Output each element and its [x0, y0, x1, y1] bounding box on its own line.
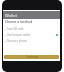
button[interactable]: Wallet [3, 11, 60, 19]
button[interactable]: Recovery phrase [5, 39, 58, 43]
staticText: Continue [26, 55, 38, 59]
staticText: Choose a method [5, 20, 33, 24]
button[interactable]: Use browser wallet [5, 33, 58, 37]
staticText: Wallet [5, 13, 17, 18]
staticText: Recovery phrase [7, 39, 28, 43]
button[interactable]: Scan QR code [5, 27, 58, 31]
staticText: Use browser wallet [7, 33, 31, 37]
staticText: Scan QR code [7, 27, 24, 31]
button[interactable]: Continue [4, 55, 59, 59]
